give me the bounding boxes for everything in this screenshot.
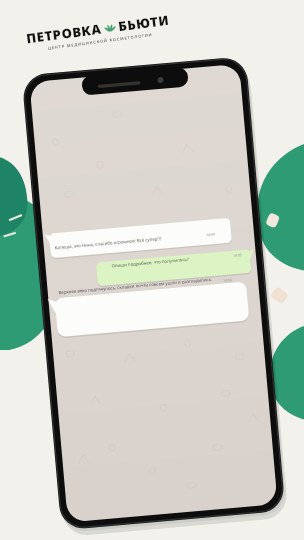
staticText: ЦЕНТР МЕДИЦИНСКОЙ КОСМЕТОЛОГИИ bbox=[47, 32, 153, 51]
staticText: 14:05 bbox=[233, 252, 242, 258]
staticText: Верхнее веко подтянулось, складки почти … bbox=[58, 274, 236, 295]
button[interactable]: Верхнее веко подтянулось, складки почти … bbox=[58, 273, 244, 295]
staticText: 14:06 bbox=[223, 277, 232, 283]
button[interactable]: Катюша, это Нина, спасибо огромное! Всё … bbox=[54, 229, 234, 250]
staticText: 14:04 bbox=[206, 231, 215, 237]
button[interactable]: Phone mockup showing a chat conversation bbox=[0, 0, 304, 540]
button[interactable]: Петровка Бьюти logo bbox=[25, 11, 172, 53]
staticText: БЬЮТИ bbox=[117, 11, 171, 35]
staticText: Опиши подробнее, что получилось? bbox=[111, 252, 231, 268]
staticText: ПЕТРОВКА bbox=[25, 20, 103, 47]
staticText: Катюша, это Нина, спасибо огромное! Всё … bbox=[54, 231, 204, 250]
button[interactable]: Опиши подробнее, что получилось? bbox=[111, 249, 261, 269]
